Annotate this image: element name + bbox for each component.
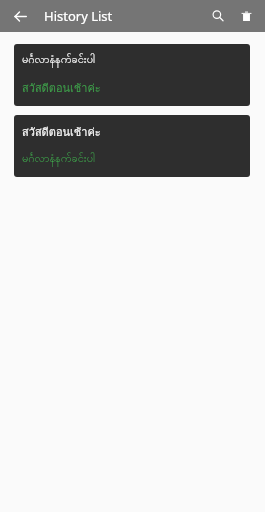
staticText: สวัสดีตอนเช้าค่ะ: [22, 79, 101, 96]
staticText: History List: [44, 7, 113, 25]
button[interactable]: Search: [205, 3, 231, 29]
staticText: สวัสดีตอนเช้าค่ะ: [22, 123, 101, 140]
button[interactable]: สวัสดีตอนเช้าค่ะ: [14, 115, 250, 177]
staticText: မင်္ဂလာနံနက်ခင်းပါ: [22, 151, 95, 167]
staticText: မင်္ဂလာနံနက်ခင်းပါ: [22, 52, 95, 68]
button[interactable]: Delete: [233, 3, 259, 29]
button[interactable]: Back: [8, 4, 32, 28]
button[interactable]: မင်္ဂလာနံနက်ခင်းပါ: [14, 44, 250, 106]
